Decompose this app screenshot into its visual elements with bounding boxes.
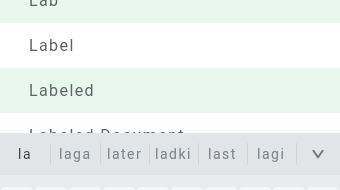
button[interactable]: Labeled (0, 68, 340, 113)
staticText: la (18, 146, 33, 162)
staticText: Label (29, 36, 75, 55)
staticText: laga (59, 146, 92, 162)
staticText: Labeled (29, 81, 95, 100)
staticText: last (208, 146, 237, 162)
staticText: ladki (155, 146, 192, 162)
button[interactable]: last (198, 133, 247, 175)
staticText: lagi (257, 146, 286, 162)
staticText: later (107, 146, 143, 162)
button[interactable]: ladki (149, 133, 198, 175)
button[interactable]: Show more suggestions (296, 133, 340, 175)
button[interactable]: lagi (247, 133, 296, 175)
button[interactable]: Labeled Document (0, 113, 340, 133)
button[interactable]: Label (0, 23, 340, 68)
staticText: Lab (29, 0, 60, 10)
button[interactable]: laga (50, 133, 100, 175)
button[interactable]: later (100, 133, 149, 175)
button[interactable]: Lab (0, 0, 340, 23)
button[interactable]: la (0, 133, 50, 175)
staticText: Labeled Document (29, 126, 185, 133)
